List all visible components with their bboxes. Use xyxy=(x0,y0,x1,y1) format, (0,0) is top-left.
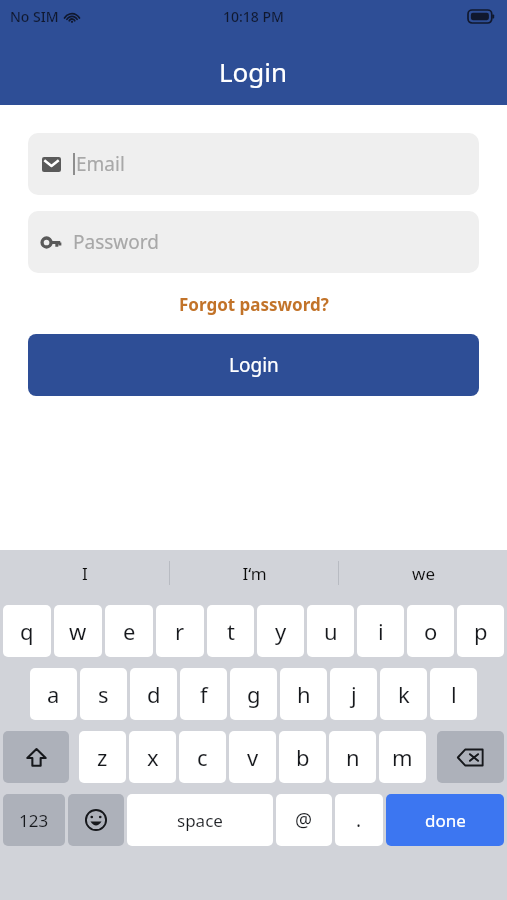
staticText: Email xyxy=(76,151,125,177)
button[interactable]: Emoji xyxy=(68,794,124,846)
button[interactable]: e xyxy=(105,605,153,657)
button[interactable]: w xyxy=(54,605,102,657)
staticText: Forgot password? xyxy=(179,293,329,316)
staticText: Login xyxy=(219,54,288,89)
staticText: a xyxy=(47,679,60,709)
button[interactable]: 123 xyxy=(3,794,65,846)
button[interactable]: Email xyxy=(28,133,479,195)
staticText: j xyxy=(351,679,357,709)
staticText: t xyxy=(227,616,235,646)
button[interactable]: j xyxy=(330,668,377,720)
button[interactable]: d xyxy=(130,668,177,720)
staticText: p xyxy=(474,616,488,646)
staticText: u xyxy=(324,616,338,646)
button[interactable]: h xyxy=(280,668,327,720)
staticText: n xyxy=(346,742,360,772)
button[interactable]: a xyxy=(30,668,77,720)
button[interactable]: l xyxy=(430,668,477,720)
button[interactable]: o xyxy=(407,605,454,657)
button[interactable]: v xyxy=(229,731,276,783)
staticText: f xyxy=(200,679,208,709)
staticText: v xyxy=(247,742,259,772)
button[interactable]: Password xyxy=(28,211,479,273)
button[interactable]: I‘m xyxy=(170,550,338,596)
button[interactable]: x xyxy=(129,731,176,783)
button[interactable]: f xyxy=(180,668,227,720)
staticText: o xyxy=(424,616,438,646)
staticText: No SIM xyxy=(10,7,59,26)
staticText: 10:18 PM xyxy=(223,7,284,26)
button[interactable]: done xyxy=(386,794,504,846)
button[interactable]: z xyxy=(79,731,126,783)
button[interactable]: Forgot password? xyxy=(171,289,337,320)
button[interactable]: Backspace xyxy=(437,731,504,783)
button[interactable]: b xyxy=(279,731,326,783)
button[interactable]: q xyxy=(3,605,51,657)
staticText: z xyxy=(97,742,108,772)
button[interactable]: k xyxy=(380,668,427,720)
staticText: m xyxy=(392,742,413,772)
staticText: done xyxy=(425,809,466,832)
staticText: l xyxy=(451,679,457,709)
button[interactable]: y xyxy=(257,605,304,657)
button[interactable]: r xyxy=(156,605,204,657)
button[interactable]: i xyxy=(357,605,404,657)
button[interactable]: m xyxy=(379,731,426,783)
staticText: g xyxy=(247,679,261,709)
staticText: i xyxy=(378,616,384,646)
button[interactable]: Login xyxy=(28,334,479,396)
staticText: c xyxy=(197,742,208,772)
staticText: Password xyxy=(73,229,159,255)
button[interactable]: we xyxy=(339,550,507,596)
staticText: space xyxy=(177,809,223,832)
button[interactable]: c xyxy=(179,731,226,783)
staticText: h xyxy=(297,679,311,709)
button[interactable]: u xyxy=(307,605,354,657)
staticText: d xyxy=(147,679,161,709)
staticText: we xyxy=(412,562,435,585)
staticText: k xyxy=(398,679,410,709)
button[interactable]: I xyxy=(0,550,169,596)
button[interactable]: g xyxy=(230,668,277,720)
staticText: w xyxy=(69,616,87,646)
staticText: I xyxy=(82,562,88,585)
staticText: e xyxy=(123,616,136,646)
button[interactable]: @ xyxy=(276,794,332,846)
button[interactable]: . xyxy=(335,794,383,846)
staticText: x xyxy=(147,742,159,772)
button[interactable]: space xyxy=(127,794,273,846)
button[interactable]: n xyxy=(329,731,376,783)
staticText: q xyxy=(20,616,34,646)
button[interactable]: t xyxy=(207,605,254,657)
staticText: . xyxy=(356,807,362,833)
button[interactable]: Shift xyxy=(3,731,69,783)
button[interactable]: s xyxy=(80,668,127,720)
staticText: r xyxy=(175,616,185,646)
staticText: s xyxy=(98,679,109,709)
staticText: 123 xyxy=(19,809,49,832)
staticText: Login xyxy=(229,352,279,378)
staticText: y xyxy=(275,616,287,646)
staticText: @ xyxy=(295,807,313,833)
staticText: b xyxy=(296,742,310,772)
button[interactable]: p xyxy=(457,605,504,657)
staticText: I‘m xyxy=(242,562,267,585)
